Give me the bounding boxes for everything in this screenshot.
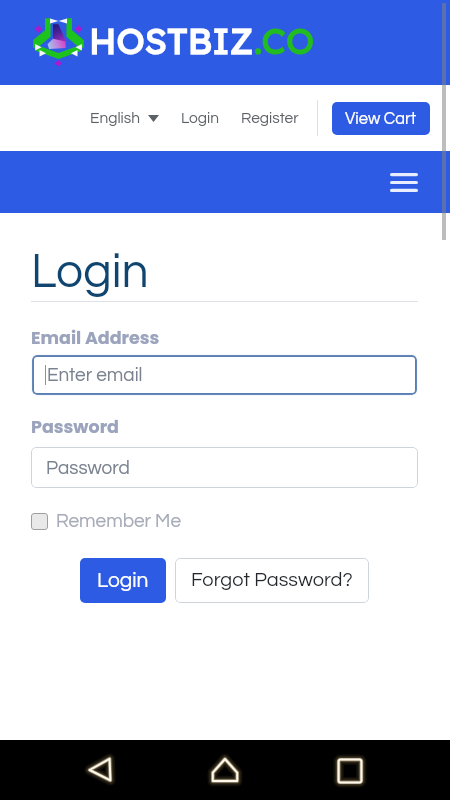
button[interactable]: Back: [76, 746, 124, 794]
button[interactable]: Recents: [326, 746, 374, 794]
staticText: .CO: [254, 18, 315, 63]
button[interactable]: English: [82, 102, 167, 134]
staticText: Login: [97, 570, 149, 592]
button[interactable]: Enter email: [32, 355, 417, 395]
button[interactable]: Login: [80, 558, 166, 603]
staticText: Email Address: [31, 326, 160, 351]
button[interactable]: Home: [201, 746, 249, 794]
staticText: Forgot Password?: [191, 570, 353, 591]
staticText: HOSTBIZ: [89, 18, 254, 63]
button[interactable]: Register: [233, 102, 307, 134]
button[interactable]: View Cart: [332, 102, 430, 135]
button[interactable]: Remember Me: [31, 511, 182, 531]
button[interactable]: Forgot Password?: [175, 558, 369, 603]
button[interactable]: Menu: [382, 165, 426, 200]
staticText: Password: [46, 458, 130, 478]
staticText: Remember Me: [56, 511, 182, 531]
button[interactable]: Password: [31, 447, 418, 488]
staticText: Password: [31, 415, 120, 440]
staticText: Login: [31, 248, 149, 297]
staticText: Enter email: [47, 365, 143, 385]
button[interactable]: Login: [173, 102, 228, 134]
staticText: English: [90, 110, 141, 126]
staticText: View Cart: [345, 110, 417, 127]
